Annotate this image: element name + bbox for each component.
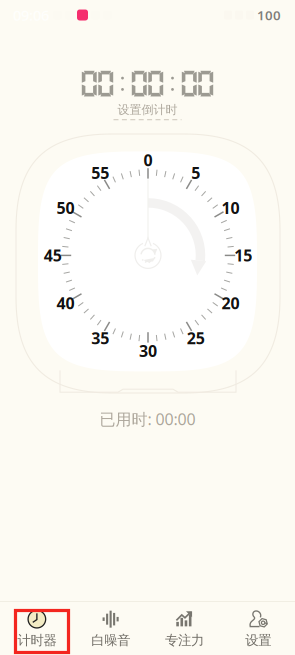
staticText: 计时器: [17, 632, 56, 649]
button[interactable]: 计时器: [0, 602, 74, 655]
staticText: 35: [91, 327, 109, 348]
staticText: 10: [221, 197, 239, 218]
staticText: 5: [191, 162, 200, 183]
staticText: 专注力: [165, 632, 204, 649]
button[interactable]: 专注力: [147, 602, 221, 655]
staticText: 55: [91, 162, 109, 183]
staticText: 20: [221, 292, 239, 314]
staticText: 40: [56, 292, 74, 314]
staticText: 30: [139, 340, 157, 361]
staticText: 白噪音: [91, 632, 130, 649]
staticText: 设置: [245, 632, 271, 649]
button[interactable]: 设置: [221, 602, 295, 655]
button[interactable]: 设置倒计时: [113, 102, 181, 120]
button[interactable]: 白噪音: [74, 602, 148, 655]
staticText: 0: [143, 149, 152, 171]
staticText: 15: [234, 245, 252, 266]
staticText: 设置倒计时: [117, 102, 177, 117]
staticText: 100: [257, 6, 281, 24]
staticText: 50: [56, 197, 74, 218]
staticText: 25: [187, 327, 205, 348]
staticText: 已用时: 00:00: [99, 408, 195, 430]
staticText: 45: [44, 245, 62, 266]
